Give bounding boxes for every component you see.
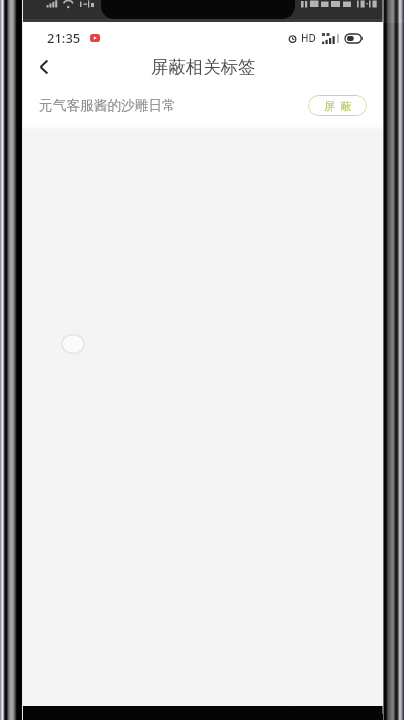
staticText: 21:35	[47, 29, 81, 47]
staticText: HD	[301, 31, 316, 45]
staticText: 屏 蔽	[324, 98, 352, 113]
button[interactable]: 元气客服酱的沙雕日常	[23, 92, 383, 119]
staticText: 元气客服酱的沙雕日常	[39, 97, 176, 114]
staticText: 屏蔽相关标签	[151, 56, 256, 78]
button[interactable]: Back	[24, 48, 62, 86]
button[interactable]: 屏 蔽	[308, 95, 367, 116]
